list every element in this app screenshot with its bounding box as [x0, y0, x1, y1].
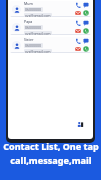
- staticText: Sister: [24, 37, 34, 42]
- button[interactable]: Call: [75, 38, 81, 44]
- button[interactable]: WhatsApp: [83, 46, 89, 52]
- staticText: Papa: [24, 19, 33, 24]
- button[interactable]: Call: [75, 2, 81, 8]
- staticText: 06000000: [25, 7, 42, 12]
- staticText: xyz@gmail.com: [25, 13, 51, 17]
- button[interactable]: WhatsApp: [83, 28, 89, 34]
- staticText: call,message,mail: [10, 154, 92, 166]
- button[interactable]: Message: [83, 20, 89, 26]
- button[interactable]: Message: [83, 2, 89, 8]
- button[interactable]: Mum: [10, 1, 91, 17]
- staticText: Contact List, One tap: [3, 140, 99, 152]
- button[interactable]: Email: [75, 46, 81, 52]
- button[interactable]: Email: [75, 28, 81, 34]
- button[interactable]: WhatsApp: [83, 10, 89, 16]
- staticText: Mum: [24, 1, 33, 6]
- button[interactable]: Call: [75, 20, 81, 26]
- button[interactable]: Message: [83, 38, 89, 44]
- button[interactable]: Add contact: [73, 117, 87, 131]
- button[interactable]: Papa: [10, 19, 91, 35]
- staticText: xyz@gmail.com: [25, 31, 51, 35]
- staticText: xyz@gmail.com: [25, 49, 51, 53]
- staticText: 06000000: [25, 25, 42, 30]
- button[interactable]: Email: [75, 10, 81, 16]
- button[interactable]: Sister: [10, 37, 91, 53]
- staticText: 06000000: [25, 43, 42, 48]
